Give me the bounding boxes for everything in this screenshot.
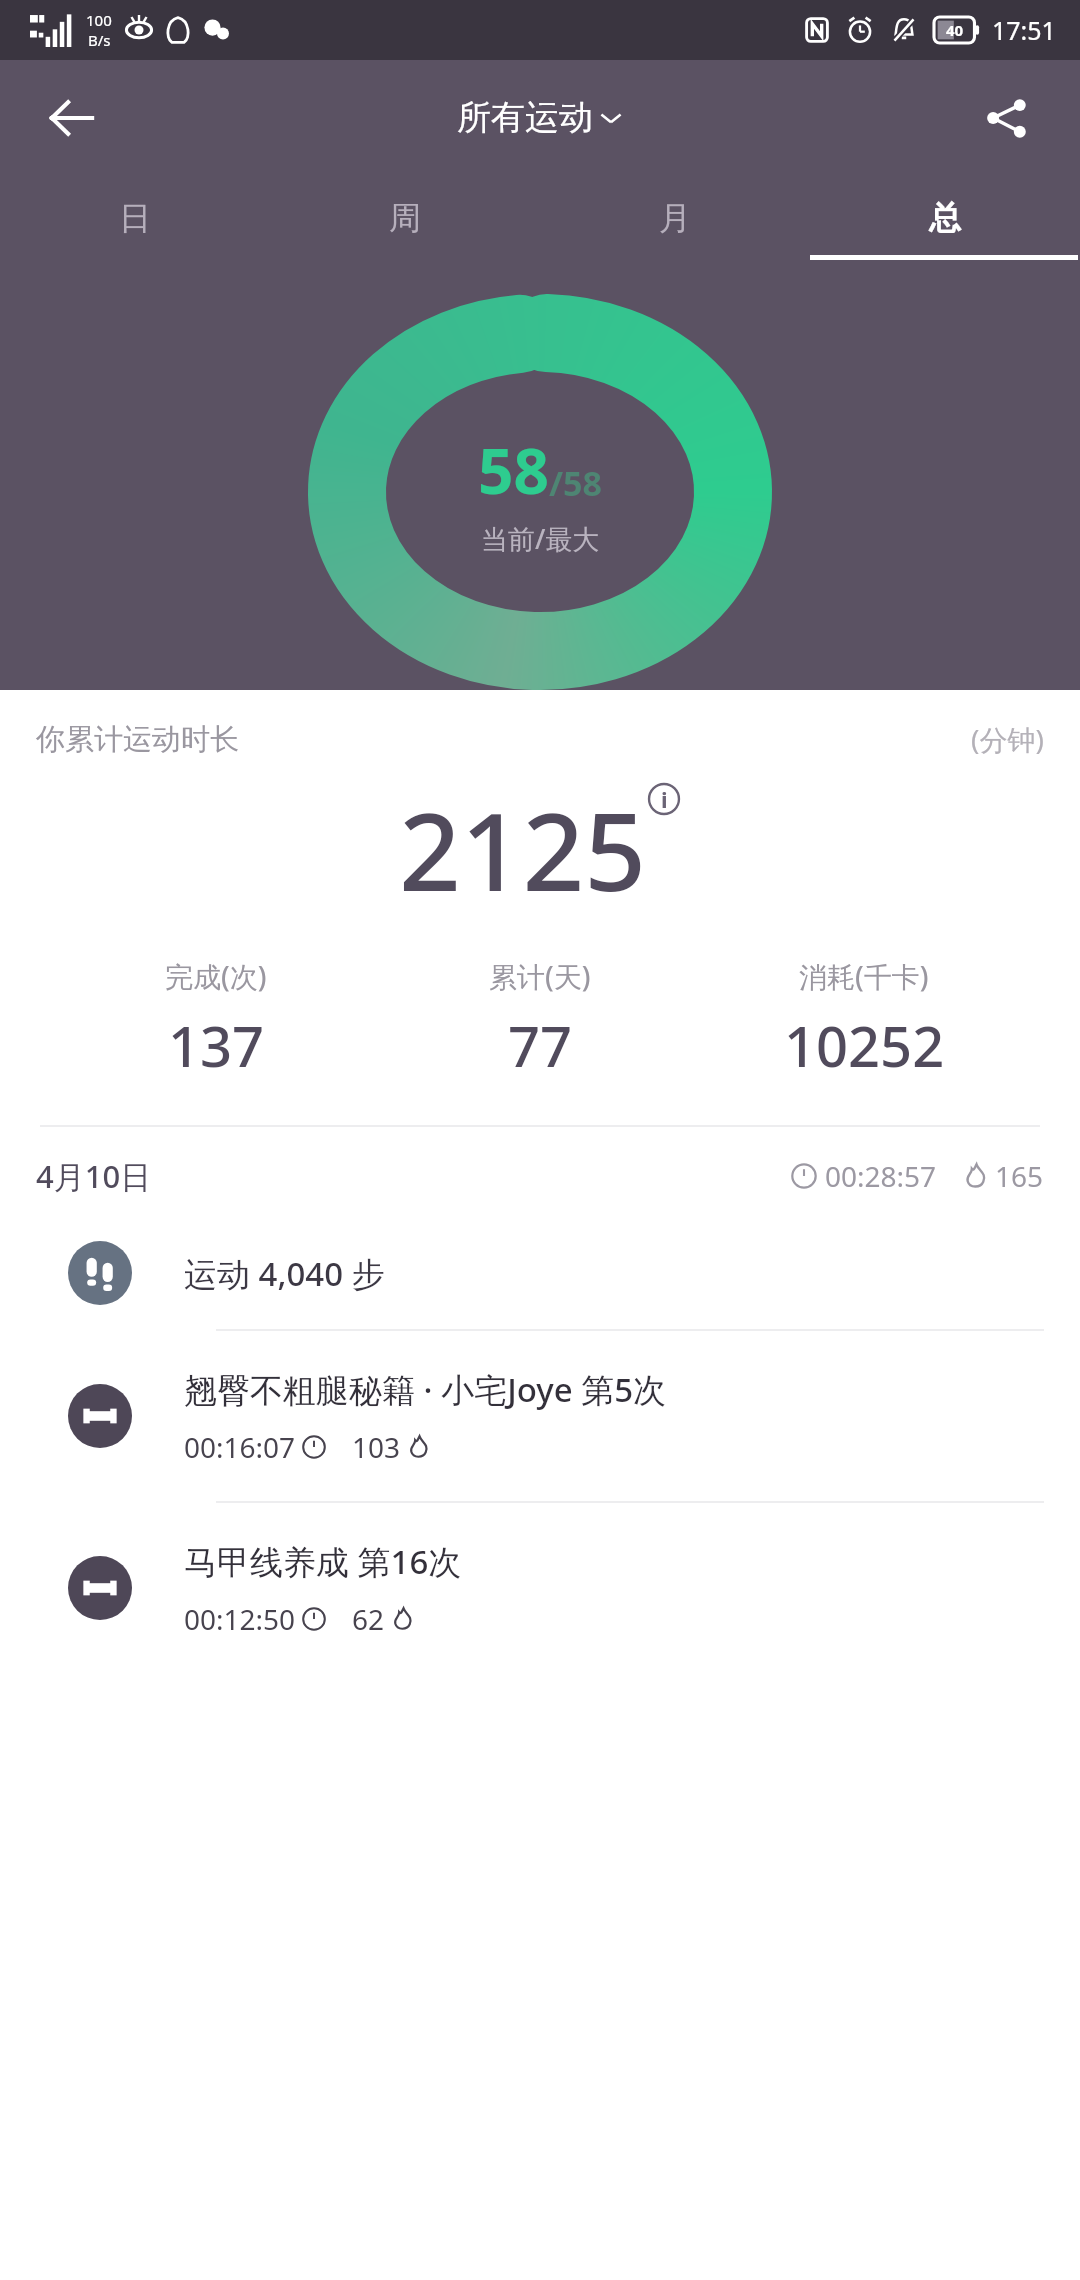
button[interactable]: Info (647, 782, 681, 816)
staticText: 103 (352, 1428, 401, 1466)
staticText: i (661, 784, 668, 814)
staticText: 月 (659, 198, 691, 238)
staticText: 00:28:57 (825, 1157, 937, 1195)
staticText: 4月10日 (36, 1155, 152, 1197)
staticText: 你累计运动时长 (36, 721, 239, 758)
staticText: 运动 4,040 步 (184, 1251, 385, 1296)
button[interactable]: 月 (540, 175, 810, 260)
button[interactable]: 总 (810, 175, 1080, 260)
button[interactable]: 翘臀不粗腿秘籍 · 小宅Joye 第5次 (0, 1331, 1080, 1501)
staticText: 100 (86, 10, 112, 30)
staticText: 完成(次) (165, 957, 267, 995)
staticText: (分钟) (971, 720, 1044, 758)
staticText: 翘臀不粗腿秘籍 · 小宅Joye 第5次 (184, 1367, 667, 1412)
staticText: 58 (478, 428, 549, 512)
staticText: /58 (549, 460, 603, 506)
button[interactable]: 马甲线养成 第16次 (0, 1503, 1080, 1673)
staticText: 当前/最大 (481, 520, 600, 557)
button[interactable]: 所有运动 (445, 88, 635, 147)
button[interactable]: 运动 4,040 步 (0, 1217, 1080, 1329)
staticText: 00:16:07 (184, 1428, 296, 1466)
staticText: 137 (168, 1007, 265, 1083)
staticText: 周 (389, 198, 421, 238)
staticText: 165 (995, 1157, 1044, 1195)
staticText: B/s (88, 30, 111, 50)
button[interactable]: Share (964, 76, 1048, 160)
staticText: 17:51 (992, 13, 1056, 47)
staticText: 10252 (784, 1007, 945, 1083)
button[interactable]: 周 (270, 175, 540, 260)
staticText: 00:12:50 (184, 1600, 296, 1638)
staticText: 40 (946, 20, 964, 40)
staticText: 马甲线养成 第16次 (184, 1539, 462, 1584)
staticText: 消耗(千卡) (799, 957, 929, 995)
staticText: 62 (352, 1600, 385, 1638)
staticText: 2125 (399, 776, 647, 923)
staticText: 77 (508, 1007, 573, 1083)
staticText: 所有运动 (457, 96, 593, 139)
button[interactable]: Back (30, 76, 114, 160)
staticText: 日 (119, 198, 151, 238)
staticText: 累计(天) (489, 957, 591, 995)
button[interactable]: 日 (0, 175, 270, 260)
staticText: 总 (929, 198, 961, 238)
